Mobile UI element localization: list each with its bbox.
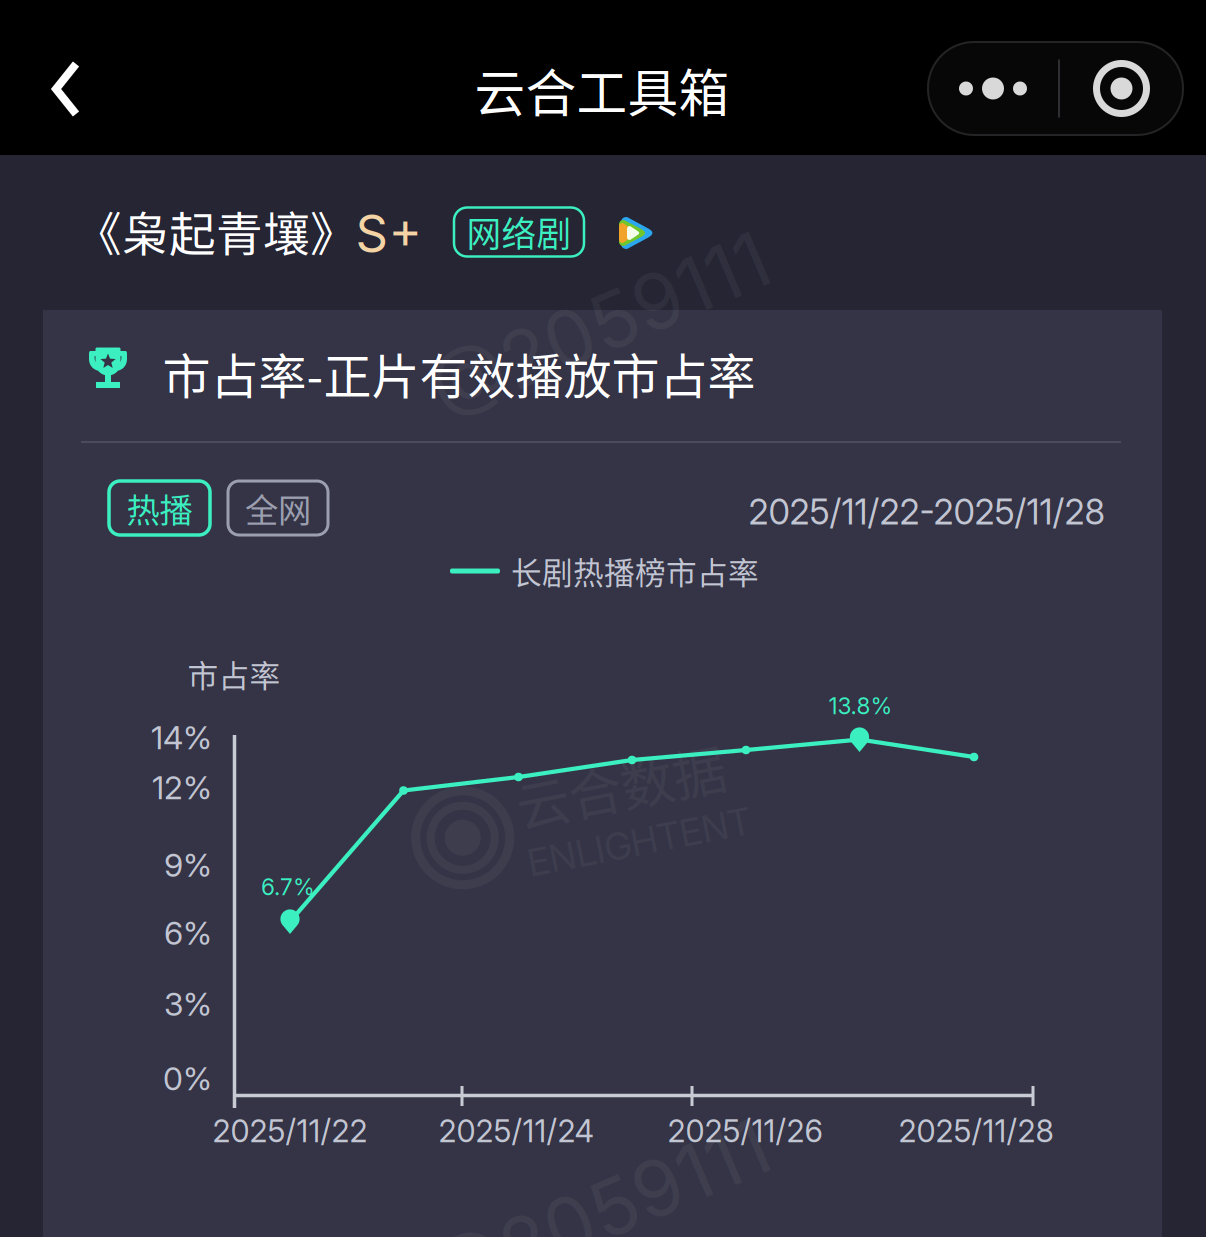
staticText: 14% <box>151 718 212 757</box>
staticText: 12% <box>152 768 212 807</box>
staticText: 9% <box>164 846 212 884</box>
staticText: 云合数据 <box>519 755 731 832</box>
staticText: 0% <box>163 1059 212 1098</box>
staticText: 2025/11/28 <box>898 1112 1053 1149</box>
button[interactable]: 热播 <box>109 481 210 535</box>
staticText: 热播 <box>126 484 192 532</box>
staticText: 市占率-正片有效播放市占率 <box>162 338 755 408</box>
staticText: 网络剧 <box>466 207 571 257</box>
staticText: 2025/11/22-2025/11/28 <box>748 491 1105 533</box>
staticText: 长剧热播榜市占率 <box>511 549 759 593</box>
staticText: @2059111 <box>420 278 779 372</box>
button[interactable]: Close mini program <box>1060 42 1183 135</box>
button[interactable]: Back <box>48 58 84 120</box>
button[interactable]: More options <box>928 42 1058 135</box>
staticText: 全网 <box>245 484 311 532</box>
staticText: 2025/11/24 <box>438 1112 593 1149</box>
staticText: 2025/11/26 <box>667 1112 822 1149</box>
staticText: @2059111 <box>420 1165 779 1237</box>
staticText: 6% <box>164 914 212 952</box>
button[interactable]: 全网 <box>228 481 328 535</box>
staticText: 13.8% <box>828 692 892 720</box>
staticText: 6.7% <box>261 873 315 901</box>
staticText: 3% <box>164 985 212 1023</box>
staticText: 市占率 <box>187 652 280 696</box>
staticText: 2025/11/22 <box>212 1112 367 1149</box>
staticText: S+ <box>355 202 422 264</box>
staticText: 云合工具箱 <box>474 53 729 127</box>
staticText: 《枭起青壤》 <box>75 197 357 265</box>
